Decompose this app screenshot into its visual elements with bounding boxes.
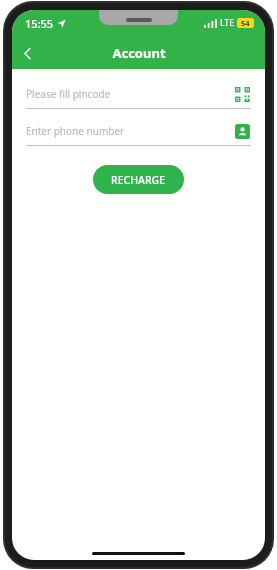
button[interactable]: Enter phone number (26, 120, 251, 142)
button[interactable]: Back (12, 38, 42, 68)
staticText: RECHARGE (111, 173, 166, 187)
button[interactable]: Please fill pincode (26, 83, 251, 105)
button[interactable]: Scan QR code (233, 85, 251, 103)
button[interactable]: Pick contact (233, 122, 251, 140)
staticText: LTE (220, 17, 234, 29)
button[interactable]: RECHARGE (93, 165, 184, 194)
staticText: Enter phone number (26, 124, 233, 138)
staticText: Account (112, 44, 166, 62)
staticText: 15:55 (25, 16, 54, 31)
staticText: 54 (241, 18, 250, 28)
staticText: Please fill pincode (26, 87, 233, 101)
